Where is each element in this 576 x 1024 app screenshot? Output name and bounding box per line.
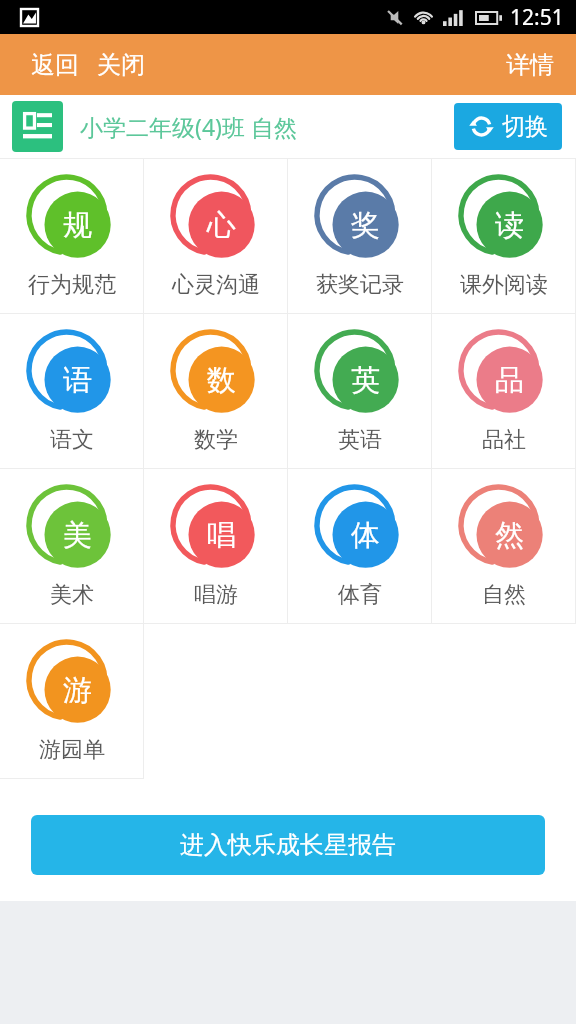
staticText: 课外阅读 <box>460 271 548 299</box>
staticText: 体 <box>351 517 380 554</box>
button[interactable]: 体 <box>288 469 432 624</box>
staticText: 数学 <box>194 426 238 454</box>
button[interactable]: 进入快乐成长星报告 <box>31 815 545 875</box>
button[interactable]: 数 <box>144 314 288 469</box>
staticText: 获奖记录 <box>316 271 404 299</box>
staticText: 英 <box>351 362 380 399</box>
button[interactable]: 游 <box>0 624 144 779</box>
staticText: 读 <box>495 207 524 244</box>
button[interactable]: 语 <box>0 314 144 469</box>
staticText: 唱 <box>207 517 236 554</box>
other: 切换 <box>468 113 495 140</box>
staticText: 品社 <box>482 426 526 454</box>
staticText: 美 <box>63 517 92 554</box>
staticText: 进入快乐成长星报告 <box>180 830 396 860</box>
button[interactable]: 然 <box>432 469 576 624</box>
staticText: 游 <box>63 672 92 709</box>
button[interactable]: 规 <box>0 159 144 314</box>
button[interactable]: 心 <box>144 159 288 314</box>
button[interactable]: 美 <box>0 469 144 624</box>
staticText: 规 <box>63 207 92 244</box>
staticText: 心 <box>207 207 236 244</box>
staticText: 小学二年级(4)班 自然 <box>80 111 297 142</box>
staticText: 品 <box>495 362 524 399</box>
staticText: 详情 <box>506 50 554 80</box>
button[interactable]: 品 <box>432 314 576 469</box>
staticText: 语文 <box>50 426 94 454</box>
staticText: 然 <box>495 517 524 554</box>
staticText: 12:51 <box>510 3 564 32</box>
staticText: 自然 <box>482 581 526 609</box>
button[interactable]: 英 <box>288 314 432 469</box>
staticText: 数 <box>207 362 236 399</box>
staticText: 心灵沟通 <box>172 271 260 299</box>
staticText: 行为规范 <box>28 271 116 299</box>
staticText: 奖 <box>351 207 380 244</box>
button[interactable]: 唱 <box>144 469 288 624</box>
staticText: 关闭 <box>97 50 145 80</box>
staticText: 返回 <box>31 50 79 80</box>
staticText: 唱游 <box>194 581 238 609</box>
staticText: 体育 <box>338 581 382 609</box>
button[interactable]: 返回 <box>0 40 87 90</box>
staticText: 英语 <box>338 426 382 454</box>
button[interactable]: 详情 <box>490 40 576 90</box>
button[interactable]: 读 <box>432 159 576 314</box>
button[interactable]: 奖 <box>288 159 432 314</box>
staticText: 切换 <box>502 112 548 141</box>
staticText: 游园单 <box>39 736 105 764</box>
button[interactable]: 关闭 <box>87 40 155 90</box>
staticText: 语 <box>63 362 92 399</box>
button[interactable]: 切换 <box>454 103 562 150</box>
staticText: 美术 <box>50 581 94 609</box>
